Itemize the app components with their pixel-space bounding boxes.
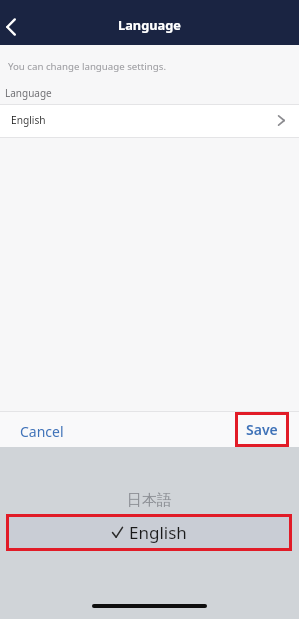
staticText: Language xyxy=(118,16,181,33)
staticText: English xyxy=(11,113,46,127)
staticText: Cancel xyxy=(20,422,64,441)
staticText: Language xyxy=(5,86,52,100)
button[interactable]: Save xyxy=(235,412,289,447)
button[interactable]: Back xyxy=(0,0,34,45)
staticText: Save xyxy=(246,420,278,439)
staticText: You can change language settings. xyxy=(8,60,166,73)
button[interactable]: Cancel xyxy=(6,412,78,447)
button[interactable]: English xyxy=(0,105,299,137)
staticText: English xyxy=(129,521,187,544)
staticText: 日本語 xyxy=(127,491,172,510)
button[interactable]: English xyxy=(6,514,292,551)
